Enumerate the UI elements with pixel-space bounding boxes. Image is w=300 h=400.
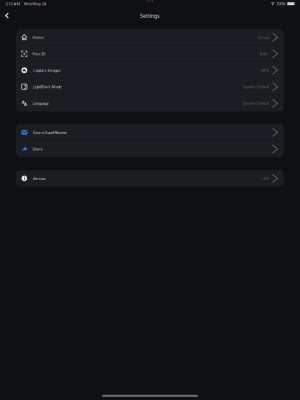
staticText: 100% bbox=[276, 1, 285, 6]
button[interactable]: Share bbox=[16, 141, 284, 157]
button[interactable]: Capture Images bbox=[16, 62, 284, 78]
staticText: After bbox=[260, 51, 269, 56]
button[interactable]: Face ID bbox=[16, 45, 284, 62]
staticText: Share bbox=[32, 146, 42, 152]
staticText: Capture Images bbox=[32, 68, 60, 73]
staticText: Settings bbox=[140, 12, 160, 19]
staticText: 10/10 bbox=[260, 68, 269, 73]
button[interactable]: Home bbox=[16, 29, 284, 45]
staticText: Home bbox=[32, 35, 43, 40]
staticText: Version bbox=[32, 176, 45, 181]
staticText: Light/Dark Mode bbox=[32, 84, 61, 89]
button[interactable]: Give a Good Review bbox=[16, 124, 284, 141]
button[interactable]: Light/Dark Mode bbox=[16, 78, 284, 95]
button[interactable]: Back bbox=[1, 10, 13, 22]
button[interactable]: Version bbox=[16, 170, 284, 187]
staticText: 1.0.0 bbox=[261, 176, 269, 181]
staticText: 2:12 AM bbox=[5, 1, 20, 6]
button[interactable]: Language bbox=[16, 95, 284, 111]
staticText: Language bbox=[32, 101, 48, 106]
staticText: Give a Good Review bbox=[32, 130, 66, 135]
staticText: Group bbox=[258, 35, 269, 40]
staticText: Wed May 24 bbox=[24, 1, 46, 6]
staticText: Face ID bbox=[32, 51, 45, 56]
staticText: System Default bbox=[243, 84, 269, 89]
staticText: System Default bbox=[243, 101, 269, 106]
